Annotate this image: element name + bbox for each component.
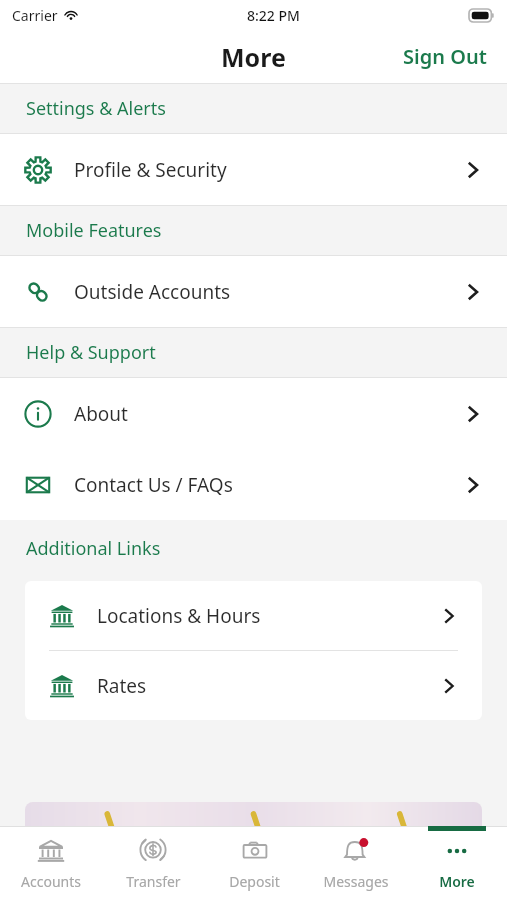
staticText: Transfer xyxy=(126,872,181,891)
button[interactable]: More xyxy=(406,826,507,900)
button[interactable]: Outside Accounts xyxy=(0,256,507,327)
staticText: About xyxy=(74,401,128,427)
staticText: Rates xyxy=(97,673,147,699)
staticText: More xyxy=(221,40,286,74)
button[interactable]: Messages xyxy=(305,826,406,900)
button[interactable]: Promotion xyxy=(25,802,482,826)
staticText: Carrier xyxy=(12,6,58,25)
button[interactable]: Rates xyxy=(25,651,482,720)
staticText: Messages xyxy=(323,872,389,891)
staticText: Deposit xyxy=(229,872,280,891)
button[interactable]: Accounts xyxy=(0,826,102,900)
staticText: Sign Out xyxy=(403,43,487,70)
button[interactable]: Sign Out xyxy=(383,33,507,80)
staticText: Settings & Alerts xyxy=(26,96,166,121)
button[interactable]: Contact Us / FAQs xyxy=(0,449,507,520)
staticText: Additional Links xyxy=(26,536,161,561)
button[interactable]: Transfer xyxy=(102,826,204,900)
button[interactable]: Deposit xyxy=(204,826,305,900)
staticText: More xyxy=(439,872,475,891)
staticText: 8:22 PM xyxy=(247,6,300,25)
staticText: Accounts xyxy=(21,872,81,891)
staticText: Locations & Hours xyxy=(97,603,261,629)
staticText: Outside Accounts xyxy=(74,279,231,305)
staticText: Help & Support xyxy=(26,340,156,365)
staticText: Mobile Features xyxy=(26,218,162,243)
staticText: Profile & Security xyxy=(74,157,227,183)
button[interactable]: Profile & Security xyxy=(0,134,507,205)
staticText: Contact Us / FAQs xyxy=(74,472,233,498)
button[interactable]: About xyxy=(0,378,507,449)
button[interactable]: Locations & Hours xyxy=(25,581,482,650)
